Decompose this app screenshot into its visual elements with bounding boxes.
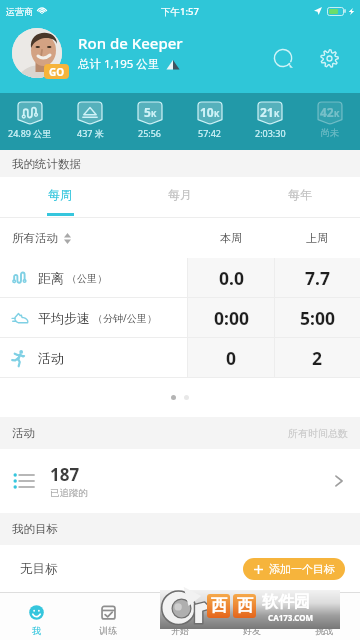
button[interactable]: 平均步速 <box>0 298 360 338</box>
staticText: 5 <box>144 104 151 120</box>
button[interactable]: 添加一个目标 <box>243 558 345 580</box>
button[interactable]: 21 <box>240 93 300 150</box>
staticText: 已追蹤的 <box>50 487 88 499</box>
staticText: 平均步速 <box>38 310 90 326</box>
staticText: K <box>214 108 220 119</box>
button[interactable]: 5 <box>120 93 180 150</box>
button[interactable]: 活动 <box>0 338 360 378</box>
staticText: 我的目标 <box>12 522 58 536</box>
button[interactable]: 训练 <box>72 593 144 640</box>
staticText: 187 <box>50 463 80 486</box>
staticText: 距离 <box>38 270 64 286</box>
button[interactable]: 42 <box>300 93 360 150</box>
staticText: 每年 <box>288 187 312 202</box>
button[interactable]: 距离 <box>0 258 360 298</box>
staticText: 25:56 <box>138 127 162 139</box>
button[interactable]: 挑战 <box>288 593 360 640</box>
button[interactable]: 187 <box>0 449 360 513</box>
staticText: （公里） <box>67 272 107 285</box>
button[interactable]: 每周 <box>0 177 120 218</box>
staticText: 本周 <box>220 231 242 245</box>
staticText: 无目标 <box>20 561 58 577</box>
staticText: 7.7 <box>305 266 330 290</box>
staticText: 0:00 <box>214 306 249 330</box>
staticText: 所有时间总数 <box>288 427 348 440</box>
button[interactable]: 我 <box>0 593 72 640</box>
staticText: GO <box>49 65 65 79</box>
staticText: K <box>334 108 340 119</box>
staticText: 活动 <box>12 426 35 440</box>
staticText: 训练 <box>99 625 117 636</box>
button[interactable]: 好友 <box>216 593 288 640</box>
staticText: 西 <box>211 596 227 616</box>
staticText: 21 <box>260 104 274 120</box>
button[interactable]: 每年 <box>240 177 360 218</box>
staticText: 437 米 <box>77 127 104 139</box>
staticText: 我 <box>32 625 41 636</box>
staticText: 10 <box>200 104 214 120</box>
staticText: 挑战 <box>315 625 333 636</box>
staticText: 42 <box>320 104 334 120</box>
staticText: 2 <box>312 346 323 370</box>
staticText: K <box>151 108 157 119</box>
button[interactable]: 437 米 <box>60 93 120 150</box>
staticText: 所有活动 <box>12 231 58 245</box>
button[interactable]: 开始 <box>144 593 216 640</box>
button[interactable]: 10 <box>180 93 240 150</box>
staticText: 下午1:57 <box>161 5 199 18</box>
button[interactable]: 24.89 公里 <box>0 93 60 150</box>
staticText: 运营商 <box>6 6 33 17</box>
staticText: 活动 <box>38 350 64 366</box>
staticText: 每周 <box>48 187 72 202</box>
staticText: 57:42 <box>198 127 222 139</box>
staticText: Ron de Keeper <box>78 33 183 53</box>
staticText: 尚未 <box>321 127 339 138</box>
staticText: 每月 <box>168 187 192 202</box>
staticText: 5:00 <box>300 306 335 330</box>
button[interactable]: Settings <box>312 41 346 75</box>
staticText: 添加一个目标 <box>269 562 335 576</box>
staticText: 0.0 <box>219 266 244 290</box>
staticText: CA173.COM <box>268 612 314 623</box>
button[interactable]: Messages <box>266 41 300 75</box>
staticText: 总计 1,195 公里 <box>78 56 160 72</box>
staticText: 开始 <box>171 625 189 636</box>
staticText: 上周 <box>306 231 328 245</box>
staticText: 西 <box>237 596 253 616</box>
staticText: K <box>274 108 280 119</box>
staticText: 我的统计数据 <box>12 157 81 171</box>
staticText: （分钟/公里） <box>93 311 157 325</box>
staticText: 软件园 <box>262 592 310 612</box>
staticText: 好友 <box>243 625 261 636</box>
staticText: 2:03:30 <box>255 127 286 139</box>
button[interactable]: 每月 <box>120 177 240 218</box>
staticText: 0 <box>226 346 237 370</box>
staticText: 24.89 公里 <box>8 127 52 139</box>
